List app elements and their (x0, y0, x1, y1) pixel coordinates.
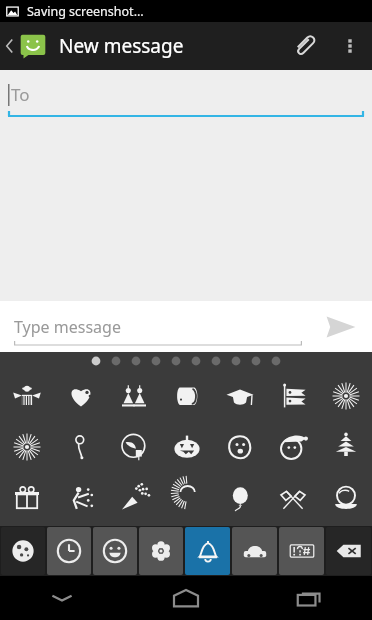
button[interactable]: firework (319, 370, 372, 421)
button[interactable]: Home (124, 576, 248, 620)
button[interactable]: carp (266, 370, 319, 421)
button[interactable]: bag (160, 370, 213, 421)
button[interactable]: dolls (107, 370, 160, 421)
button[interactable]: Recent (47, 527, 91, 575)
button[interactable]: Smileys (93, 527, 137, 575)
staticText: To (11, 83, 30, 106)
button[interactable]: balloon (213, 472, 266, 523)
button[interactable]: sparkler (0, 421, 54, 472)
button[interactable]: Languages (1, 527, 45, 575)
button[interactable]: More options (328, 24, 372, 68)
button[interactable]: Attach (280, 22, 328, 70)
button[interactable]: Nature (139, 527, 183, 575)
button[interactable]: tree (319, 421, 372, 472)
button[interactable]: flags (266, 472, 319, 523)
button[interactable]: windbell (107, 421, 160, 472)
button[interactable]: popper (107, 472, 160, 523)
staticText: Type message (14, 316, 121, 338)
button[interactable]: cap (213, 370, 266, 421)
button[interactable]: ghost (213, 421, 266, 472)
button[interactable]: Symbols (279, 527, 324, 575)
other: Back (4, 36, 15, 56)
staticText: New message (59, 33, 184, 59)
staticText: Saving screenshot… (27, 3, 144, 20)
button[interactable]: Travel (232, 527, 277, 575)
button[interactable]: pumpkin (160, 421, 213, 472)
button[interactable]: heart (54, 370, 107, 421)
button[interactable]: Send (310, 301, 372, 352)
button[interactable]: lantern (54, 421, 107, 472)
button[interactable]: burst (160, 472, 213, 523)
button[interactable]: Back (0, 22, 51, 70)
button[interactable]: gift (0, 472, 54, 523)
button[interactable]: Type message (14, 301, 302, 352)
button[interactable]: Celebration (185, 527, 230, 575)
button[interactable]: crystal (319, 472, 372, 523)
button[interactable]: Back (0, 576, 124, 620)
button[interactable]: confetti2 (54, 472, 107, 523)
button[interactable]: To (8, 83, 362, 106)
button[interactable]: santa (266, 421, 319, 472)
button[interactable]: angel (0, 370, 54, 421)
button[interactable]: Delete (326, 527, 371, 575)
button[interactable]: Recent apps (248, 576, 372, 620)
